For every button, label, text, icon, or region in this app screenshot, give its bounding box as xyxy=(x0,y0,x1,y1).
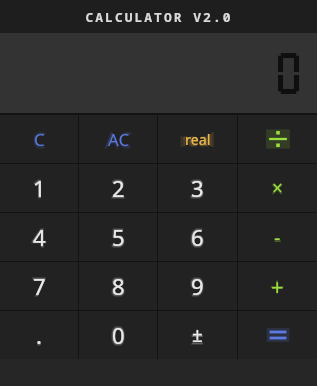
button[interactable]: 5 xyxy=(79,213,157,261)
staticText: 5 xyxy=(110,218,127,256)
button[interactable]: 2 xyxy=(79,164,157,212)
staticText: . xyxy=(35,316,43,354)
staticText: + xyxy=(269,267,286,305)
staticText: 2 xyxy=(112,173,125,203)
staticText: 3 xyxy=(191,173,204,203)
staticText: 0 xyxy=(111,318,126,352)
staticText: 0 xyxy=(110,316,127,354)
staticText: 1 xyxy=(33,173,46,203)
staticText: 4 xyxy=(33,222,46,252)
staticText: CALCULATOR V2.0 xyxy=(85,8,233,26)
staticText: real xyxy=(182,128,213,151)
staticText: + xyxy=(270,269,285,303)
button[interactable]: C xyxy=(0,115,78,163)
staticText: ± xyxy=(190,318,205,352)
button[interactable]: Equals xyxy=(238,311,317,359)
staticText: C xyxy=(34,128,45,151)
staticText: C xyxy=(32,124,47,155)
button[interactable]: Multiply xyxy=(238,164,317,212)
staticText: AC xyxy=(108,128,130,151)
staticText: 1 xyxy=(32,171,47,205)
staticText: real xyxy=(185,130,211,149)
staticText: 6 xyxy=(189,218,206,256)
button[interactable]: 4 xyxy=(0,213,78,261)
button[interactable]: 9 xyxy=(158,262,237,310)
staticText: 3 xyxy=(189,169,206,207)
staticText: . xyxy=(36,320,42,350)
staticText: C xyxy=(33,126,46,153)
staticText: - xyxy=(274,224,281,251)
button[interactable]: 6 xyxy=(158,213,237,261)
staticText: 2 xyxy=(110,169,127,207)
button[interactable]: Add xyxy=(238,262,317,310)
button[interactable]: . xyxy=(0,311,78,359)
button[interactable]: 7 xyxy=(0,262,78,310)
button[interactable]: Subtract xyxy=(238,213,317,261)
staticText: 4 xyxy=(31,218,48,256)
staticText: 6 xyxy=(191,222,204,252)
staticText: 9 xyxy=(191,271,204,301)
staticText: AC xyxy=(106,126,132,153)
button[interactable]: real xyxy=(158,115,237,163)
staticText: 9 xyxy=(190,269,205,303)
staticText: × xyxy=(272,175,283,201)
staticText: 7 xyxy=(32,269,47,303)
staticText: 9 xyxy=(189,267,206,305)
staticText: real xyxy=(179,126,216,153)
staticText: . xyxy=(36,318,43,352)
staticText: 8 xyxy=(111,269,126,303)
staticText: 7 xyxy=(31,267,48,305)
staticText: × xyxy=(271,173,284,203)
staticText: + xyxy=(271,271,284,301)
button[interactable]: 8 xyxy=(79,262,157,310)
button[interactable]: Divide xyxy=(238,115,317,163)
button[interactable]: 0 xyxy=(79,311,157,359)
staticText: AC xyxy=(104,124,133,155)
staticText: 5 xyxy=(111,220,126,254)
staticText: ± xyxy=(192,322,203,348)
button[interactable]: Toggle sign xyxy=(158,311,237,359)
staticText: × xyxy=(270,171,285,205)
staticText: ± xyxy=(191,320,204,350)
staticText: 0 xyxy=(112,320,125,350)
staticText: 4 xyxy=(32,220,47,254)
staticText: 7 xyxy=(33,271,46,301)
staticText: 6 xyxy=(190,220,205,254)
staticText: 1 xyxy=(31,169,48,207)
staticText: 5 xyxy=(112,222,125,252)
button[interactable]: 3 xyxy=(158,164,237,212)
staticText: 8 xyxy=(110,267,127,305)
staticText: - xyxy=(274,222,282,253)
button[interactable]: 1 xyxy=(0,164,78,212)
staticText: - xyxy=(273,220,282,255)
staticText: 3 xyxy=(190,171,205,205)
button[interactable]: AC xyxy=(79,115,157,163)
staticText: 8 xyxy=(112,271,125,301)
staticText: 2 xyxy=(111,171,126,205)
